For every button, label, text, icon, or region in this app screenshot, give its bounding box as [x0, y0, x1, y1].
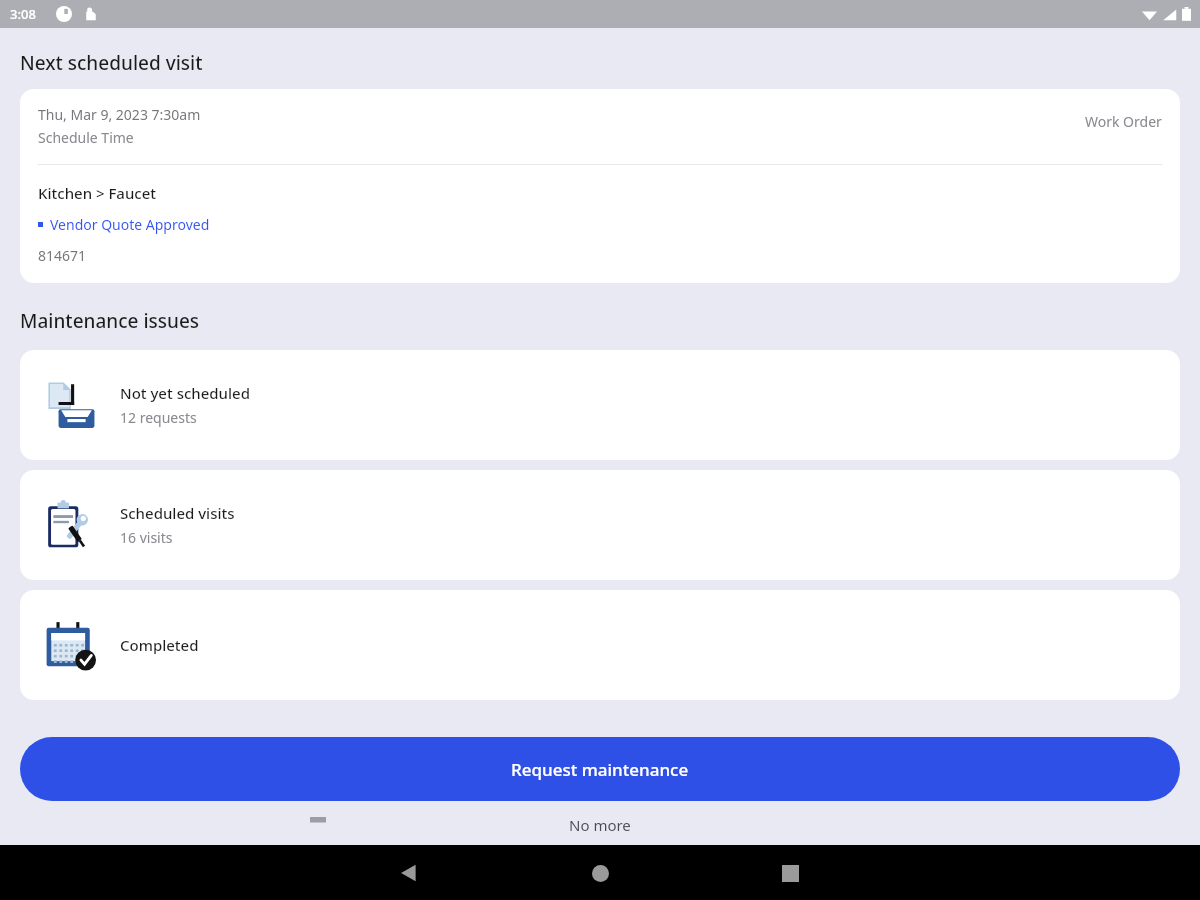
staticText: Maintenance issues	[20, 308, 200, 334]
staticText: Work Order	[1085, 112, 1162, 131]
button[interactable]: Thu, Mar 9, 2023 7:30am	[20, 89, 1180, 283]
button[interactable]: Home	[573, 846, 627, 900]
staticText: Vendor Quote Approved	[50, 215, 210, 234]
staticText: No more	[569, 815, 631, 835]
button[interactable]: Recent apps	[763, 846, 817, 900]
staticText: Scheduled visits	[120, 503, 235, 523]
staticText: Next scheduled visit	[20, 50, 203, 76]
staticText: 12 requests	[120, 408, 197, 427]
staticText: Schedule Time	[38, 128, 134, 147]
button[interactable]: Completed	[20, 590, 1180, 700]
button[interactable]: Back	[382, 846, 436, 900]
other: Scheduled visits	[44, 499, 96, 551]
button[interactable]: Request maintenance	[20, 737, 1180, 801]
staticText: Completed	[120, 635, 199, 655]
button[interactable]: Scheduled visits	[20, 470, 1180, 580]
staticText: 814671	[38, 246, 87, 265]
other: Not yet scheduled	[44, 379, 96, 431]
staticText: 16 visits	[120, 528, 173, 547]
staticText: Not yet scheduled	[120, 383, 250, 403]
staticText: Thu, Mar 9, 2023 7:30am	[38, 105, 201, 124]
other: Completed	[44, 619, 96, 671]
staticText: Request maintenance	[511, 758, 689, 781]
button[interactable]: Not yet scheduled	[20, 350, 1180, 460]
staticText: Kitchen > Faucet	[38, 183, 157, 203]
staticText: 3:08	[10, 5, 36, 23]
